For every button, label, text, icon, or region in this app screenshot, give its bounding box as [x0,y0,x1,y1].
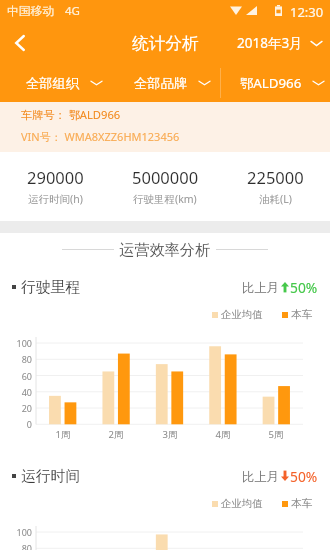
staticText: 290000 [27,166,84,188]
staticText: 行驶里程(km) [133,192,197,206]
staticText: 3周 [150,428,190,441]
staticText: 20 [4,402,32,414]
staticText: 80 [4,542,32,550]
staticText: 4G [65,3,80,19]
staticText: 60 [4,370,32,382]
staticText: 企业均值 [221,308,263,321]
staticText: 运行时间(h) [28,192,83,206]
staticText: 全部组织 [26,75,80,92]
staticText: 5周 [256,428,296,441]
staticText: 0 [4,418,32,430]
staticText: 企业均值 [221,497,263,510]
staticText: 中国移动 [7,4,55,19]
staticText: 50% [290,278,318,297]
button[interactable]: 鄂ALD966 [232,61,330,105]
staticText: 4周 [203,428,243,441]
staticText: 100 [4,337,32,349]
button[interactable]: 全部组织 [14,61,114,105]
staticText: 2周 [96,428,136,441]
staticText: 油耗(L) [259,192,292,206]
staticText: 鄂ALD966 [240,74,302,92]
staticText: 80 [4,353,32,365]
staticText: 运营效率分析 [119,240,211,259]
button[interactable]: 全部品牌 [122,61,222,105]
staticText: 车牌号： 鄂ALD966 [21,107,121,122]
staticText: 225000 [247,166,304,188]
staticText: 比上月 [242,469,279,484]
staticText: 40 [4,386,32,398]
button[interactable]: Back [0,25,40,61]
staticText: 5000000 [132,166,199,188]
staticText: 统计分析 [132,33,199,54]
staticText: 本车 [291,497,313,510]
staticText: VIN号： WMA8XZZ6HM123456 [21,129,180,144]
staticText: 100 [4,526,32,538]
button[interactable]: 2018年3月 [237,25,322,61]
staticText: 50% [290,467,318,486]
staticText: 运行时间 [21,467,81,486]
staticText: 本车 [291,308,313,321]
staticText: 全部品牌 [134,75,188,92]
staticText: 比上月 [242,280,279,295]
staticText: 2018年3月 [237,34,303,52]
staticText: 行驶里程 [21,278,81,297]
staticText: 12:30 [290,3,324,21]
staticText: 1周 [43,428,83,441]
